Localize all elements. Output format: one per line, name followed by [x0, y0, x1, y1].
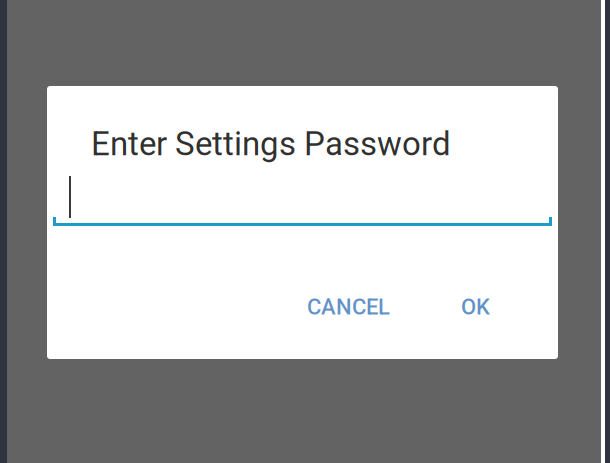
button[interactable]: CANCEL	[288, 289, 408, 325]
button[interactable]: Settings password	[52, 166, 553, 230]
staticText: CANCEL	[307, 294, 390, 320]
button[interactable]: OK	[445, 289, 505, 325]
staticText: OK	[461, 294, 490, 320]
staticText: Enter Settings Password	[91, 125, 451, 163]
